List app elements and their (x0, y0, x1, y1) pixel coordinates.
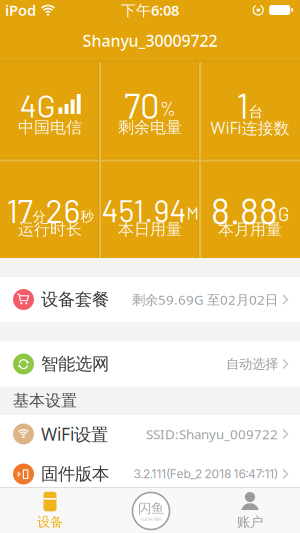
staticText: 17分26秒 (6, 191, 93, 229)
staticText: FLASH FISH (140, 516, 161, 522)
staticText: 剩余电量 (118, 118, 182, 137)
staticText: iPod (5, 0, 36, 20)
staticText: 8.88G (211, 189, 289, 231)
staticText: 闪鱼 (138, 500, 164, 517)
button[interactable]: 设备 (5, 488, 95, 533)
staticText: 下午6:08 (121, 0, 179, 20)
staticText: 设备套餐 (41, 289, 109, 310)
staticText: 剩余59.69G 至02月02日 (132, 291, 278, 308)
staticText: SSID:Shanyu_009722 (146, 425, 278, 443)
staticText: 固件版本 (41, 463, 109, 485)
staticText: 1台 (236, 85, 263, 125)
staticText: Shanyu_30009722 (82, 30, 217, 51)
staticText: 451.94M (101, 192, 198, 228)
button[interactable]: 闪鱼 (132, 492, 169, 529)
staticText: WiFi连接数 (210, 117, 289, 138)
button[interactable]: 账户 (205, 488, 295, 533)
staticText: 4G (19, 86, 55, 124)
staticText: 运行时长 (18, 220, 82, 239)
staticText: 本月用量 (218, 220, 282, 239)
staticText: WiFi设置 (41, 422, 108, 445)
staticText: 本日用量 (118, 220, 182, 239)
staticText: 基本设置 (13, 391, 77, 411)
staticText: 智能选网 (41, 353, 109, 375)
staticText: 中国电信 (18, 118, 82, 137)
staticText: 账户 (237, 514, 263, 530)
button[interactable]: 固件版本 (0, 458, 300, 489)
button[interactable]: WiFi设置 (0, 415, 300, 460)
staticText: 设备 (37, 514, 63, 530)
staticText: 70% (124, 85, 176, 125)
button[interactable]: 设备套餐 (0, 277, 300, 322)
button[interactable]: 智能选网 (0, 341, 300, 386)
staticText: 3.2.111(Feb_2 2018 16:47:11) (133, 467, 278, 481)
staticText: 自动选择 (226, 356, 278, 372)
